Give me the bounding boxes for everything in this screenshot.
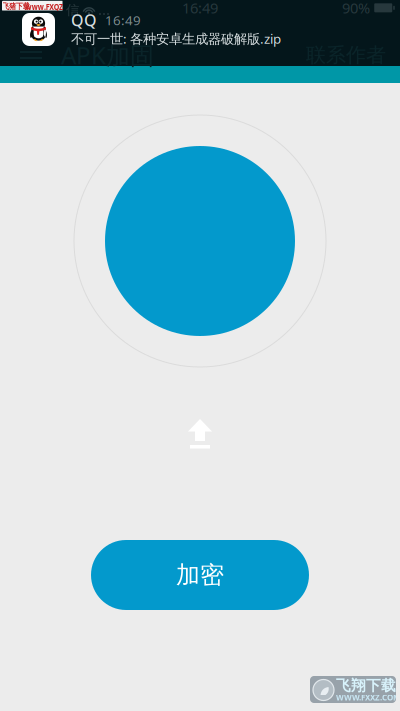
- staticText: 90%: [342, 0, 370, 18]
- staticText: APK加固: [61, 39, 154, 71]
- staticText: WWW.FXXZ.COM: [336, 692, 400, 703]
- staticText: 联系作者: [306, 43, 386, 67]
- staticText: QQ: [71, 9, 97, 31]
- staticText: www.FXQZ.com: [25, 1, 87, 12]
- staticText: 16:49: [105, 11, 141, 29]
- button[interactable]: Menu: [14, 45, 48, 65]
- button[interactable]: 联系作者: [306, 43, 386, 67]
- staticText: 不可一世: 各种安卓生成器破解版.zip: [71, 30, 281, 47]
- staticText: 飞猪下载: [2, 1, 34, 11]
- staticText: 加密: [176, 560, 224, 590]
- staticText: 飞翔下载: [336, 676, 396, 694]
- staticText: 信: [66, 2, 79, 18]
- button[interactable]: 加密: [91, 540, 309, 610]
- staticText: 16:49: [182, 0, 218, 18]
